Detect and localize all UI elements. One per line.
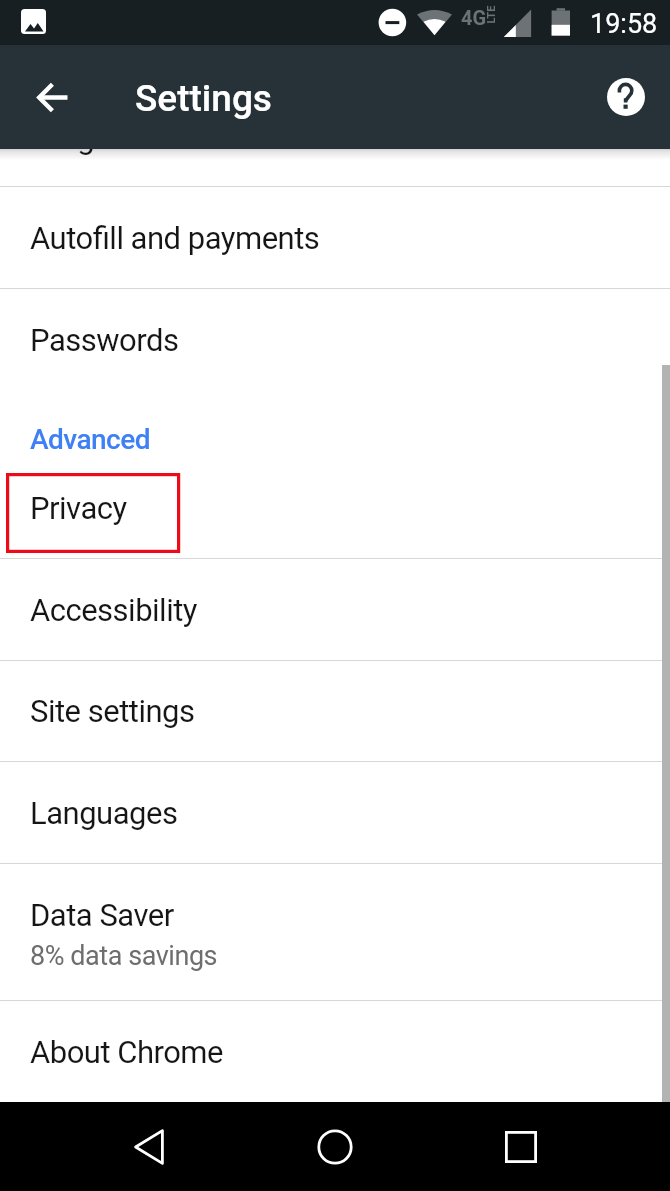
staticText: Privacy — [30, 490, 127, 526]
staticText: 4G — [461, 6, 487, 29]
button[interactable]: Help — [595, 66, 657, 128]
staticText: Languages — [30, 795, 178, 831]
button[interactable]: Data Saver — [0, 864, 670, 1000]
staticText: About Chrome — [30, 1034, 223, 1070]
button[interactable]: Accessibility — [0, 559, 670, 660]
button[interactable]: Back — [109, 1107, 189, 1187]
button[interactable]: Passwords — [0, 289, 670, 390]
staticText: Advanced — [30, 423, 150, 456]
button[interactable]: Privacy — [0, 457, 670, 558]
staticText: Languages — [28, 149, 93, 156]
staticText: LTE — [484, 5, 497, 23]
staticText: Data Saver — [30, 897, 174, 933]
button[interactable]: Home — [295, 1107, 375, 1187]
staticText: 8% data savings — [30, 940, 218, 972]
staticText: Settings — [135, 77, 272, 120]
staticText: Autofill and payments — [30, 220, 320, 256]
staticText: Site settings — [30, 693, 195, 729]
button[interactable]: Languages — [0, 762, 670, 863]
button[interactable]: About Chrome — [0, 1001, 670, 1102]
staticText: 19:58 — [590, 8, 658, 40]
button[interactable]: Recent apps — [481, 1107, 561, 1187]
staticText: Passwords — [30, 322, 179, 358]
button[interactable]: Back — [19, 65, 83, 129]
staticText: Accessibility — [30, 592, 197, 628]
button[interactable]: Autofill and payments — [0, 187, 670, 288]
button[interactable]: Site settings — [0, 661, 670, 761]
